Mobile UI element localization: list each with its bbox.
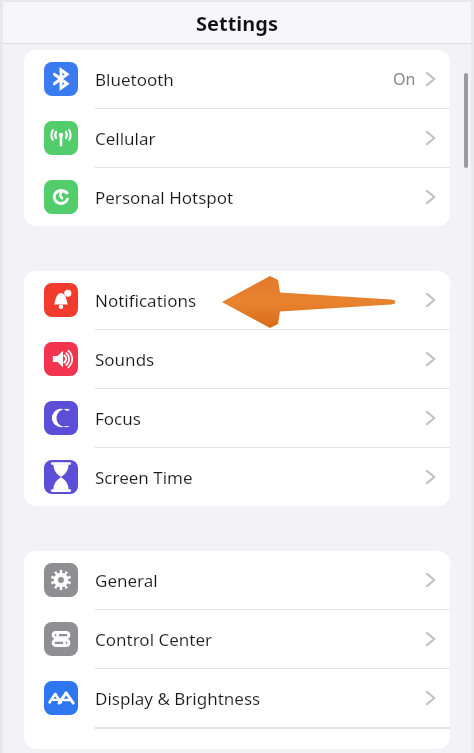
staticText: Bluetooth — [95, 68, 174, 91]
staticText: Sounds — [95, 348, 155, 371]
button[interactable]: Control Center — [24, 610, 450, 668]
staticText: Notifications — [95, 289, 197, 312]
staticText: General — [95, 569, 158, 592]
staticText: Personal Hotspot — [95, 186, 234, 209]
button[interactable]: Notifications — [24, 271, 450, 329]
staticText: On — [393, 68, 416, 90]
button[interactable]: Bluetooth — [24, 50, 450, 108]
button[interactable]: Sounds — [24, 330, 450, 388]
button[interactable]: Display & Brightness — [24, 669, 450, 727]
button[interactable]: Screen Time — [24, 448, 450, 506]
staticText: Screen Time — [95, 466, 193, 489]
button[interactable]: General — [24, 551, 450, 609]
button[interactable]: Focus — [24, 389, 450, 447]
staticText: Cellular — [95, 127, 156, 150]
staticText: Settings — [196, 10, 278, 37]
staticText: Display & Brightness — [95, 687, 261, 710]
staticText: Control Center — [95, 628, 213, 651]
button[interactable]: Personal Hotspot — [24, 168, 450, 226]
staticText: Focus — [95, 407, 141, 430]
button[interactable]: Cellular — [24, 109, 450, 167]
